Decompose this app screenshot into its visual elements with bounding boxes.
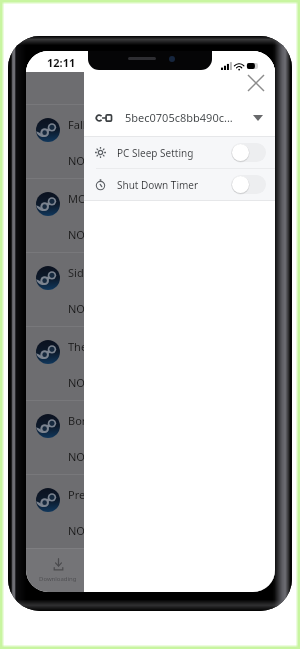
staticText: NO [68, 301, 85, 316]
staticText: Downloading [39, 575, 77, 583]
staticText: NO [68, 227, 85, 242]
staticText: NO [68, 153, 85, 168]
button[interactable]: Pre [26, 475, 275, 549]
staticText: 5bec0705c8bb490c... [125, 110, 253, 125]
staticText: NO [68, 449, 85, 464]
button[interactable]: The [26, 327, 275, 401]
staticText: PC Sleep Setting [117, 146, 194, 160]
button[interactable]: Close [242, 69, 270, 97]
staticText: Bor [68, 413, 87, 428]
button[interactable]: Fall [26, 105, 275, 179]
staticText: The [68, 339, 88, 354]
staticText: 12:11 [47, 55, 76, 70]
button[interactable]: PC Sleep Setting [231, 143, 266, 162]
staticText: Shut Down Timer [117, 178, 199, 192]
button[interactable]: Bor [26, 401, 275, 475]
staticText: MO [68, 191, 87, 206]
button[interactable]: Downloading [26, 548, 90, 592]
staticText: NO [68, 523, 85, 538]
staticText: Sid [68, 265, 84, 280]
button[interactable]: Shut Down Timer [231, 175, 266, 194]
button[interactable]: 5bec0705c8bb490c... [84, 99, 275, 136]
button[interactable]: PC Sleep Setting [84, 137, 275, 168]
button[interactable]: MO [26, 179, 275, 253]
button[interactable]: Shut Down Timer [84, 169, 275, 200]
staticText: NO [68, 375, 85, 390]
button[interactable]: Sid [26, 253, 275, 327]
staticText: Fall [68, 117, 86, 132]
staticText: Pre [68, 487, 86, 502]
